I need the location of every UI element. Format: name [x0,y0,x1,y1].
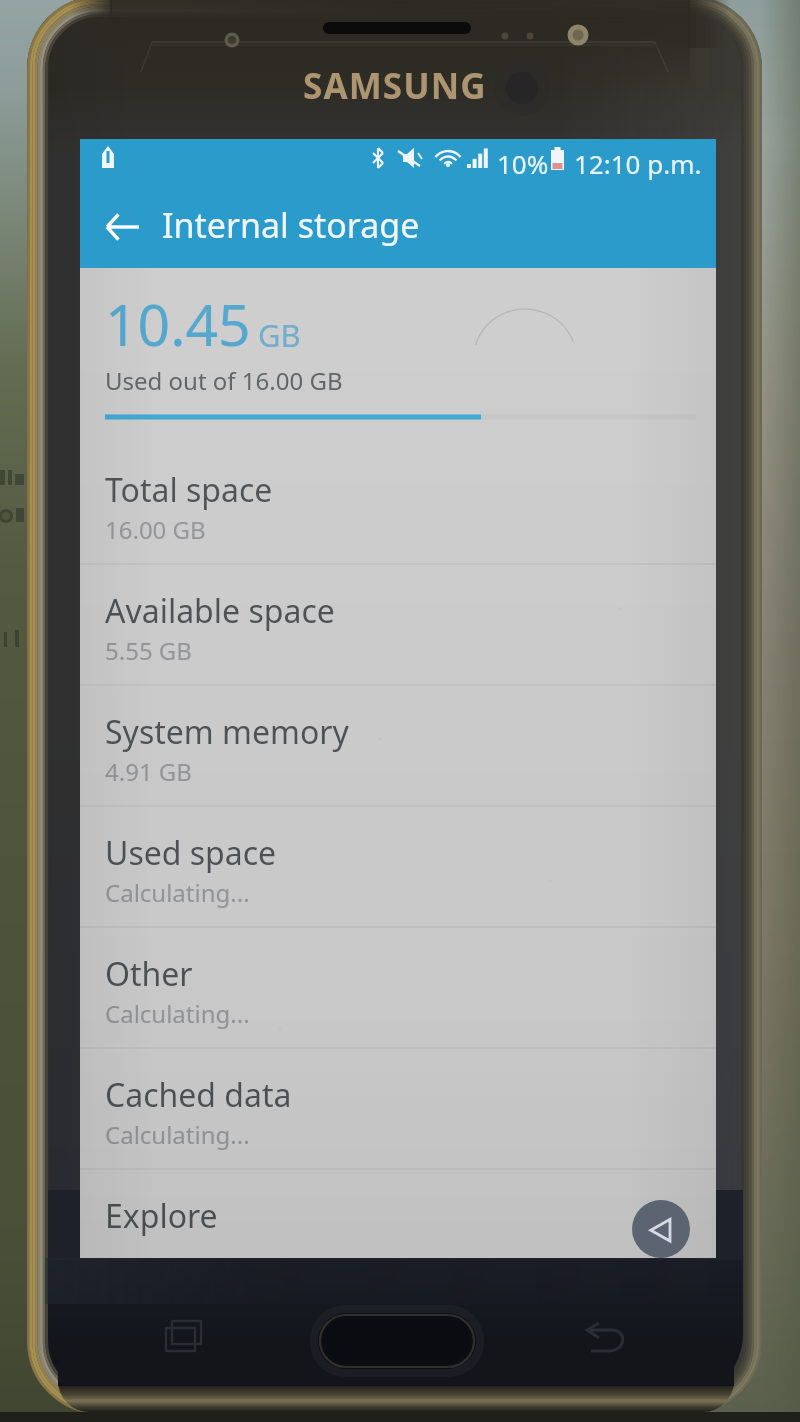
staticText: GB [258,314,301,356]
staticText: 10.45 [105,285,251,363]
staticText: Calculating... [105,1118,250,1151]
button[interactable]: Navigate up [91,195,155,259]
staticText: 16.00 GB [105,513,206,546]
button[interactable]: Total space [80,444,716,565]
button[interactable]: Explore [80,1170,716,1258]
button[interactable]: Other [80,928,716,1049]
staticText: SAMSUNG [303,62,487,110]
staticText: Calculating... [105,876,250,909]
staticText: Other [105,952,193,996]
staticText: 10% [497,146,549,181]
button[interactable]: Available space [80,565,716,686]
button[interactable]: Used space [80,807,716,928]
staticText: Available space [105,589,335,633]
staticText: Used space [105,831,277,875]
button[interactable]: Cached data [80,1049,716,1170]
staticText: 4.91 GB [105,755,192,788]
staticText: Internal storage [162,202,420,248]
staticText: Calculating... [105,997,250,1030]
staticText: 12:10 p.m. [574,146,702,181]
button[interactable]: System memory [80,686,716,807]
staticText: 5.55 GB [105,634,192,667]
staticText: Total space [105,468,273,512]
staticText: System memory [105,710,349,754]
button[interactable]: Back [632,1200,690,1258]
staticText: Explore [105,1194,218,1238]
staticText: Cached data [105,1073,292,1117]
staticText: Used out of 16.00 GB [105,364,343,397]
